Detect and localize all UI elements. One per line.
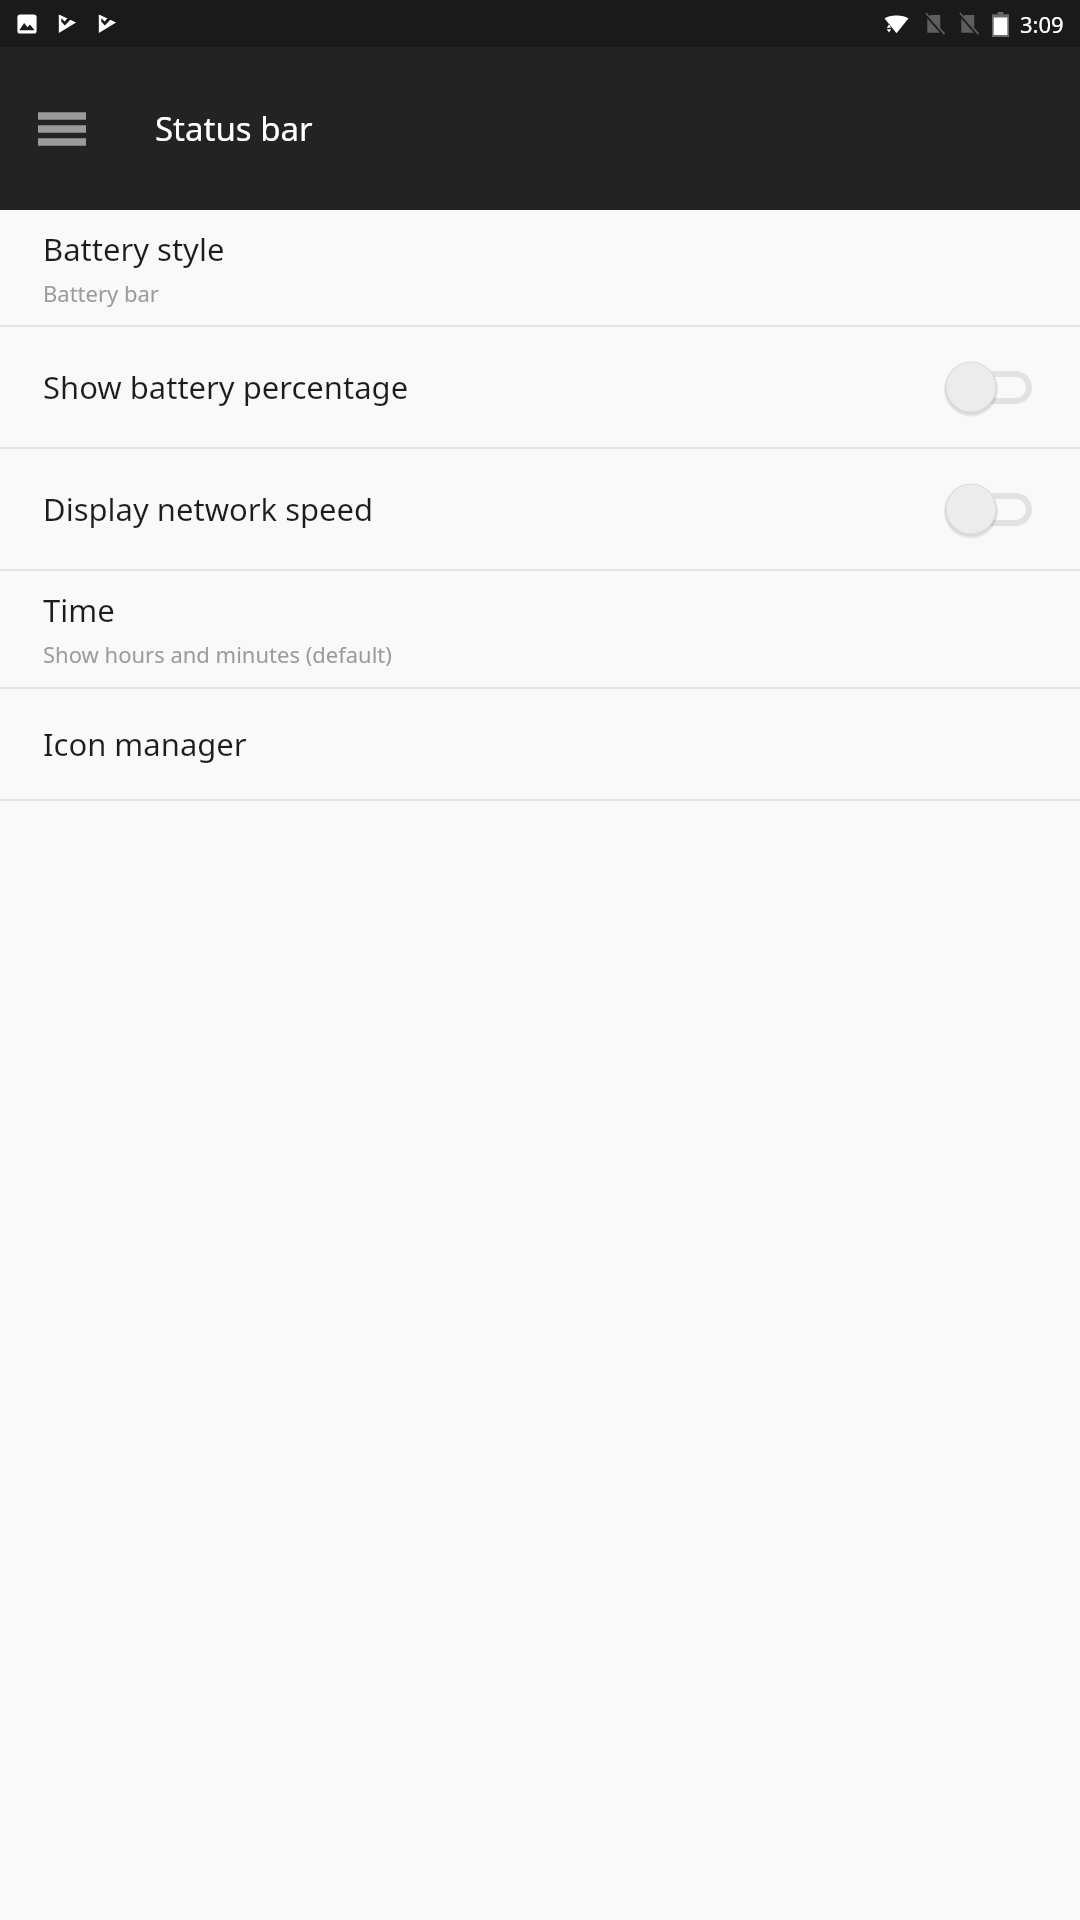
staticText: Status bar (155, 106, 313, 151)
staticText: Icon manager (43, 723, 247, 765)
staticText: Time (43, 589, 115, 631)
button[interactable]: Show battery percentage (0, 327, 1080, 447)
button[interactable]: Time (0, 571, 1080, 687)
staticText: Show hours and minutes (default) (43, 639, 392, 669)
button[interactable]: Open navigation menu (26, 93, 98, 165)
staticText: Battery style (43, 228, 225, 270)
button[interactable]: Icon manager (0, 689, 1080, 799)
staticText: Battery bar (43, 278, 159, 308)
button[interactable]: Battery style (0, 210, 1080, 325)
button[interactable]: Display network speed (0, 449, 1080, 569)
staticText: Show battery percentage (43, 366, 944, 408)
staticText: Display network speed (43, 488, 944, 530)
staticText: 3:09 (1020, 9, 1064, 39)
